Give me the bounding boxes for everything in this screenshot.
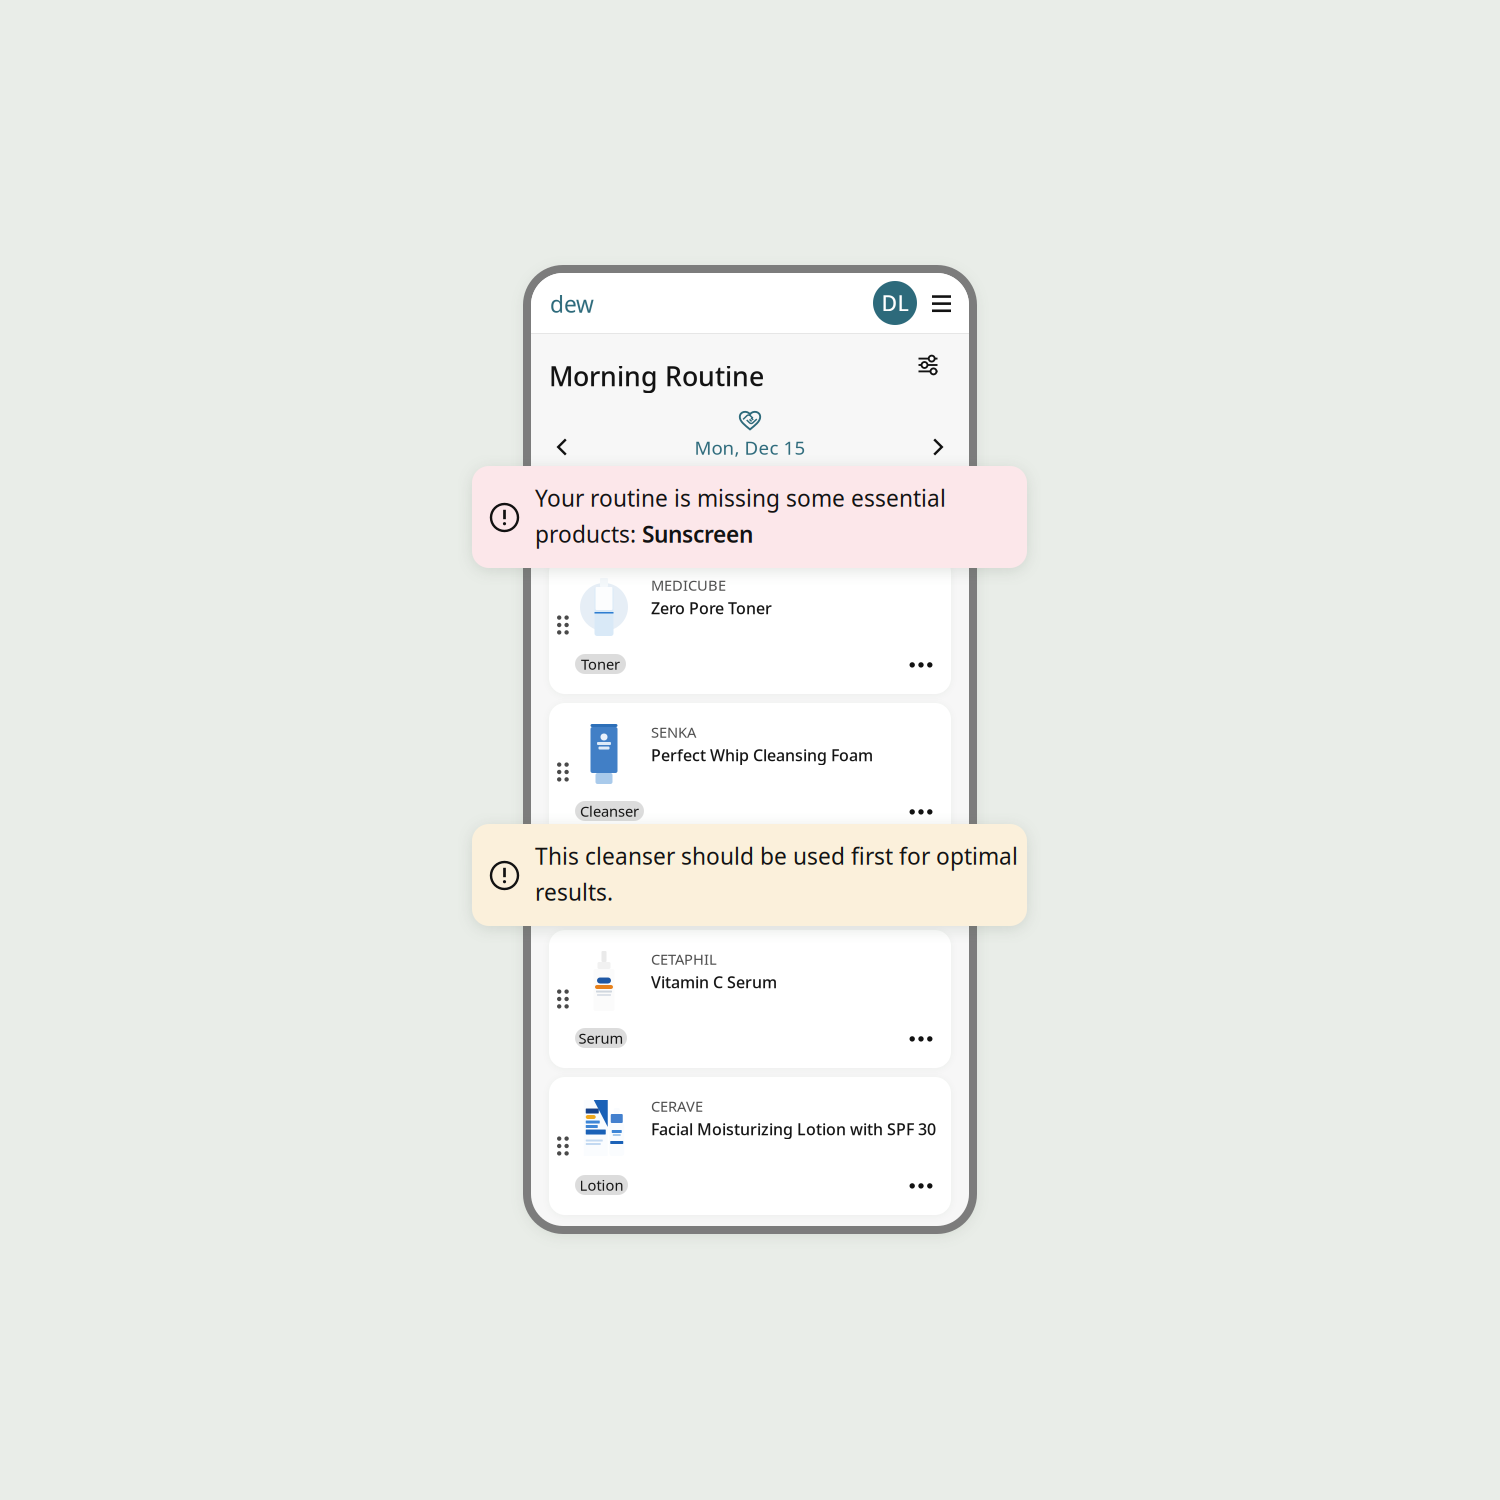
staticText: DL — [881, 289, 908, 317]
button[interactable]: Next day — [923, 432, 953, 462]
staticText: This cleanser should be used first for o… — [535, 841, 1018, 871]
staticText: Perfect Whip Cleansing Foam — [651, 744, 873, 766]
button[interactable]: Menu — [929, 281, 954, 325]
button[interactable]: Cleanser — [575, 801, 644, 821]
staticText: Facial Moisturizing Lotion with SPF 30 — [651, 1118, 936, 1140]
staticText: results. — [535, 877, 613, 907]
button[interactable]: More options for Perfect Whip Cleansing … — [893, 798, 949, 826]
button[interactable]: More options for Zero Pore Toner — [893, 651, 949, 679]
button[interactable]: Mon, Dec 15 — [694, 435, 805, 460]
staticText: Your routine is missing some essential — [535, 483, 946, 513]
button[interactable]: Account, D L — [873, 281, 917, 325]
staticText: products: Sunscreen — [535, 519, 753, 549]
button[interactable]: Serum — [575, 1028, 627, 1048]
staticText: SENKA — [651, 722, 696, 742]
staticText: CETAPHIL — [651, 949, 717, 969]
staticText: CERAVE — [651, 1096, 703, 1116]
staticText: Mon, Dec 15 — [694, 435, 805, 460]
staticText: Lotion — [579, 1175, 623, 1195]
button[interactable]: Previous day — [547, 432, 577, 462]
button[interactable]: Toner — [575, 654, 626, 674]
button[interactable]: Lotion — [575, 1175, 628, 1195]
staticText: Morning Routine — [549, 358, 764, 394]
staticText: MEDICUBE — [651, 575, 726, 595]
staticText: Zero Pore Toner — [651, 597, 772, 619]
staticText: Cleanser — [580, 801, 639, 821]
staticText: Vitamin C Serum — [651, 971, 777, 993]
staticText: Serum — [578, 1028, 623, 1048]
button[interactable]: Routine settings — [909, 348, 947, 382]
button[interactable]: More options for Vitamin C Serum — [893, 1025, 949, 1053]
button[interactable]: More options for Facial Moisturizing Lot… — [893, 1172, 949, 1200]
staticText: Toner — [581, 654, 620, 674]
staticText: dew — [550, 289, 594, 319]
